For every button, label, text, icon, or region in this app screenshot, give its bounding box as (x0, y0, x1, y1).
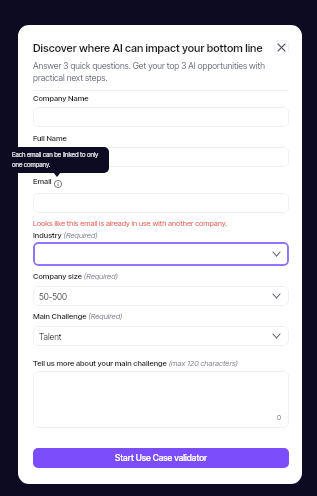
staticText: Full Name (33, 134, 67, 143)
button[interactable] (33, 107, 289, 127)
staticText: Company Name (33, 94, 89, 103)
staticText: 0 (277, 413, 282, 421)
staticText: Answer 3 quick questions. Get your top 3… (33, 61, 289, 83)
button[interactable] (33, 193, 289, 213)
button[interactable]: Email info (54, 180, 62, 188)
staticText: Talent (39, 332, 62, 342)
staticText: Looks like this email is already in use … (33, 219, 227, 228)
staticText: Discover where AI can impact your bottom… (33, 41, 263, 54)
button[interactable]: Close (274, 40, 289, 55)
button[interactable] (33, 286, 289, 306)
staticText: Main Challenge (Required) (33, 312, 123, 321)
button[interactable] (33, 326, 289, 346)
staticText: Company size (Required) (33, 272, 118, 281)
staticText: Industry (Required) (33, 231, 98, 240)
button[interactable] (33, 371, 289, 428)
staticText: Email (33, 177, 52, 186)
staticText: Start Use Case validator (115, 453, 208, 464)
staticText: 50-500 (39, 292, 67, 302)
button[interactable]: Start Use Case validator (33, 448, 289, 468)
staticText: Each email can be linked to only one com… (12, 151, 99, 169)
button[interactable] (33, 147, 289, 167)
staticText: Tell us more about your main challenge (… (33, 359, 238, 368)
button[interactable] (33, 242, 289, 266)
